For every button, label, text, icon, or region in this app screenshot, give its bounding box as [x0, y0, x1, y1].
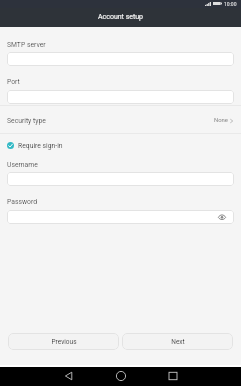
staticText: SMTP server: [7, 41, 46, 49]
staticText: Next: [171, 338, 185, 346]
staticText: Account setup: [98, 13, 144, 21]
staticText: None: [214, 117, 228, 124]
staticText: 10:00: [224, 1, 237, 7]
staticText: Security type: [7, 117, 46, 125]
button[interactable]: Require sign-in: [0, 136, 241, 155]
button[interactable]: [7, 90, 234, 104]
staticText: Require sign-in: [18, 142, 63, 150]
button[interactable]: Back: [64, 371, 74, 381]
button[interactable]: Previous: [8, 333, 119, 350]
button[interactable]: Show password: [218, 214, 226, 220]
staticText: Password: [7, 198, 38, 206]
staticText: Username: [7, 161, 38, 169]
staticText: Port: [7, 78, 20, 86]
button[interactable]: Show password: [7, 210, 234, 224]
button[interactable]: Recents: [168, 371, 178, 381]
button[interactable]: [7, 172, 234, 186]
button[interactable]: [7, 52, 234, 66]
button[interactable]: Home: [116, 371, 126, 381]
button[interactable]: Security type: [0, 107, 241, 134]
button[interactable]: Next: [122, 333, 233, 350]
staticText: Previous: [51, 338, 77, 346]
